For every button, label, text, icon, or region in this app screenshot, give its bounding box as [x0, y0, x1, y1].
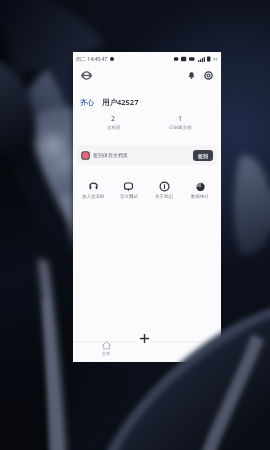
staticText: 文档 [102, 351, 110, 356]
staticText: 加入交流群 [82, 194, 105, 200]
button[interactable]: 关于我们 [146, 178, 182, 203]
button[interactable]: Notifications [184, 68, 198, 82]
button[interactable]: 2 [80, 114, 147, 131]
staticText: 周二 14:45:47 [76, 56, 108, 63]
button[interactable]: Settings [201, 68, 215, 82]
staticText: 91 [213, 57, 218, 62]
button[interactable]: 签到保存文档奖 [77, 145, 217, 165]
button[interactable]: 官方网站 [111, 178, 146, 203]
staticText: 数据统计 [191, 194, 209, 200]
staticText: 签到保存文档奖 [93, 152, 128, 158]
button[interactable]: 加入交流群 [76, 178, 111, 203]
staticText: 文档表 [107, 125, 121, 131]
staticText: 2 [111, 114, 116, 124]
staticText: 签到 [198, 153, 208, 159]
staticText: 关于我们 [155, 194, 173, 200]
staticText: 齐心 [80, 98, 94, 107]
staticText: 1 [178, 114, 183, 124]
staticText: 官方网站 [120, 194, 138, 200]
staticText: 用户42527 [102, 97, 139, 107]
button[interactable]: 文档 [91, 341, 121, 356]
button[interactable]: Scan [79, 68, 93, 82]
staticText: 已创建文档 [169, 125, 192, 131]
button[interactable]: Add [135, 329, 154, 348]
button[interactable]: 签到 [193, 150, 213, 161]
button[interactable]: 数据统计 [182, 178, 218, 203]
button[interactable]: 1 [147, 114, 214, 131]
